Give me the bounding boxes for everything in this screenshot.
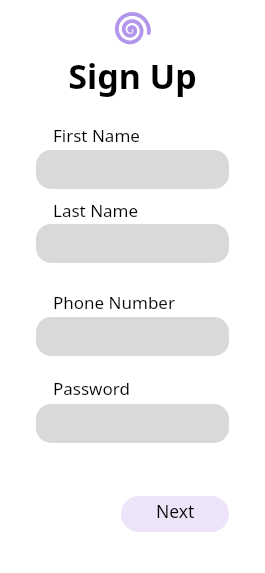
- staticText: Password: [53, 377, 130, 400]
- button[interactable]: [36, 317, 229, 356]
- button[interactable]: [36, 224, 229, 263]
- staticText: Phone Number: [53, 291, 175, 314]
- button[interactable]: [36, 404, 229, 443]
- staticText: Sign Up: [0, 53, 265, 99]
- button[interactable]: [36, 150, 229, 189]
- button[interactable]: Next: [121, 496, 229, 532]
- staticText: First Name: [53, 124, 140, 147]
- staticText: Next: [156, 499, 195, 523]
- staticText: Last Name: [53, 199, 139, 222]
- other: App logo: [111, 10, 151, 50]
